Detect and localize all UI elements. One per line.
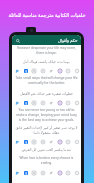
button[interactable]: Search (14, 37, 21, 44)
staticText: When love is broken every chance is endi… (15, 156, 78, 165)
button[interactable]: Messenger (64, 169, 71, 176)
button[interactable]: Twitter (13, 138, 20, 145)
button[interactable]: WhatsApp (39, 169, 46, 176)
staticText: Take small steps that will change your l… (15, 76, 78, 85)
button[interactable]: Twitter (13, 169, 20, 176)
button[interactable]: Telegram (47, 169, 54, 176)
staticText: خلفيات الكتابية مترجمة مناسبة للعائلة (0, 12, 94, 19)
button[interactable]: Facebook (22, 67, 29, 74)
button[interactable]: WhatsApp (39, 67, 46, 74)
staticText: However desperate your life may seem, th… (15, 46, 78, 55)
button[interactable]: Messenger (64, 138, 71, 145)
staticText: لا يوجد عمر صغير أو كبير لإحداث التغيير … (15, 125, 78, 135)
button[interactable]: Twitter (13, 99, 20, 106)
button[interactable]: Instagram (30, 169, 37, 176)
button[interactable]: WhatsApp (39, 99, 46, 106)
button[interactable]: Twitter (13, 67, 20, 74)
button[interactable]: Viber (56, 138, 63, 145)
button[interactable]: Instagram (30, 99, 37, 106)
button[interactable]: Telegram (47, 99, 54, 106)
staticText: You are never too young or too old to ma… (15, 108, 78, 122)
button[interactable]: Instagram (30, 138, 37, 145)
button[interactable]: Telegram (47, 138, 54, 145)
staticText: خطوات صغيرة تغير حياتك نحو الأفضل (15, 91, 78, 96)
button[interactable]: Messenger (64, 99, 71, 106)
button[interactable]: Viber (56, 99, 63, 106)
button[interactable]: Facebook (22, 99, 29, 106)
button[interactable]: Telegram (47, 67, 54, 74)
button[interactable]: Viber (56, 67, 63, 74)
button[interactable]: Facebook (22, 169, 29, 176)
button[interactable]: Facebook (22, 138, 29, 145)
button[interactable]: More (73, 169, 80, 176)
button[interactable]: More (73, 67, 80, 74)
button[interactable]: Instagram (30, 67, 37, 74)
staticText: عندما ينكسر الحب تنتهي كل الفرص (15, 147, 78, 152)
button[interactable]: WhatsApp (39, 138, 46, 145)
button[interactable]: More (73, 138, 80, 145)
button[interactable]: More (73, 99, 80, 106)
button[interactable]: Messenger (64, 67, 71, 74)
button[interactable]: Viber (56, 169, 63, 176)
staticText: حكم وأقوال (58, 38, 78, 43)
staticText: مهما بدت حياتك يائسة، فهناك أمل (15, 59, 78, 64)
